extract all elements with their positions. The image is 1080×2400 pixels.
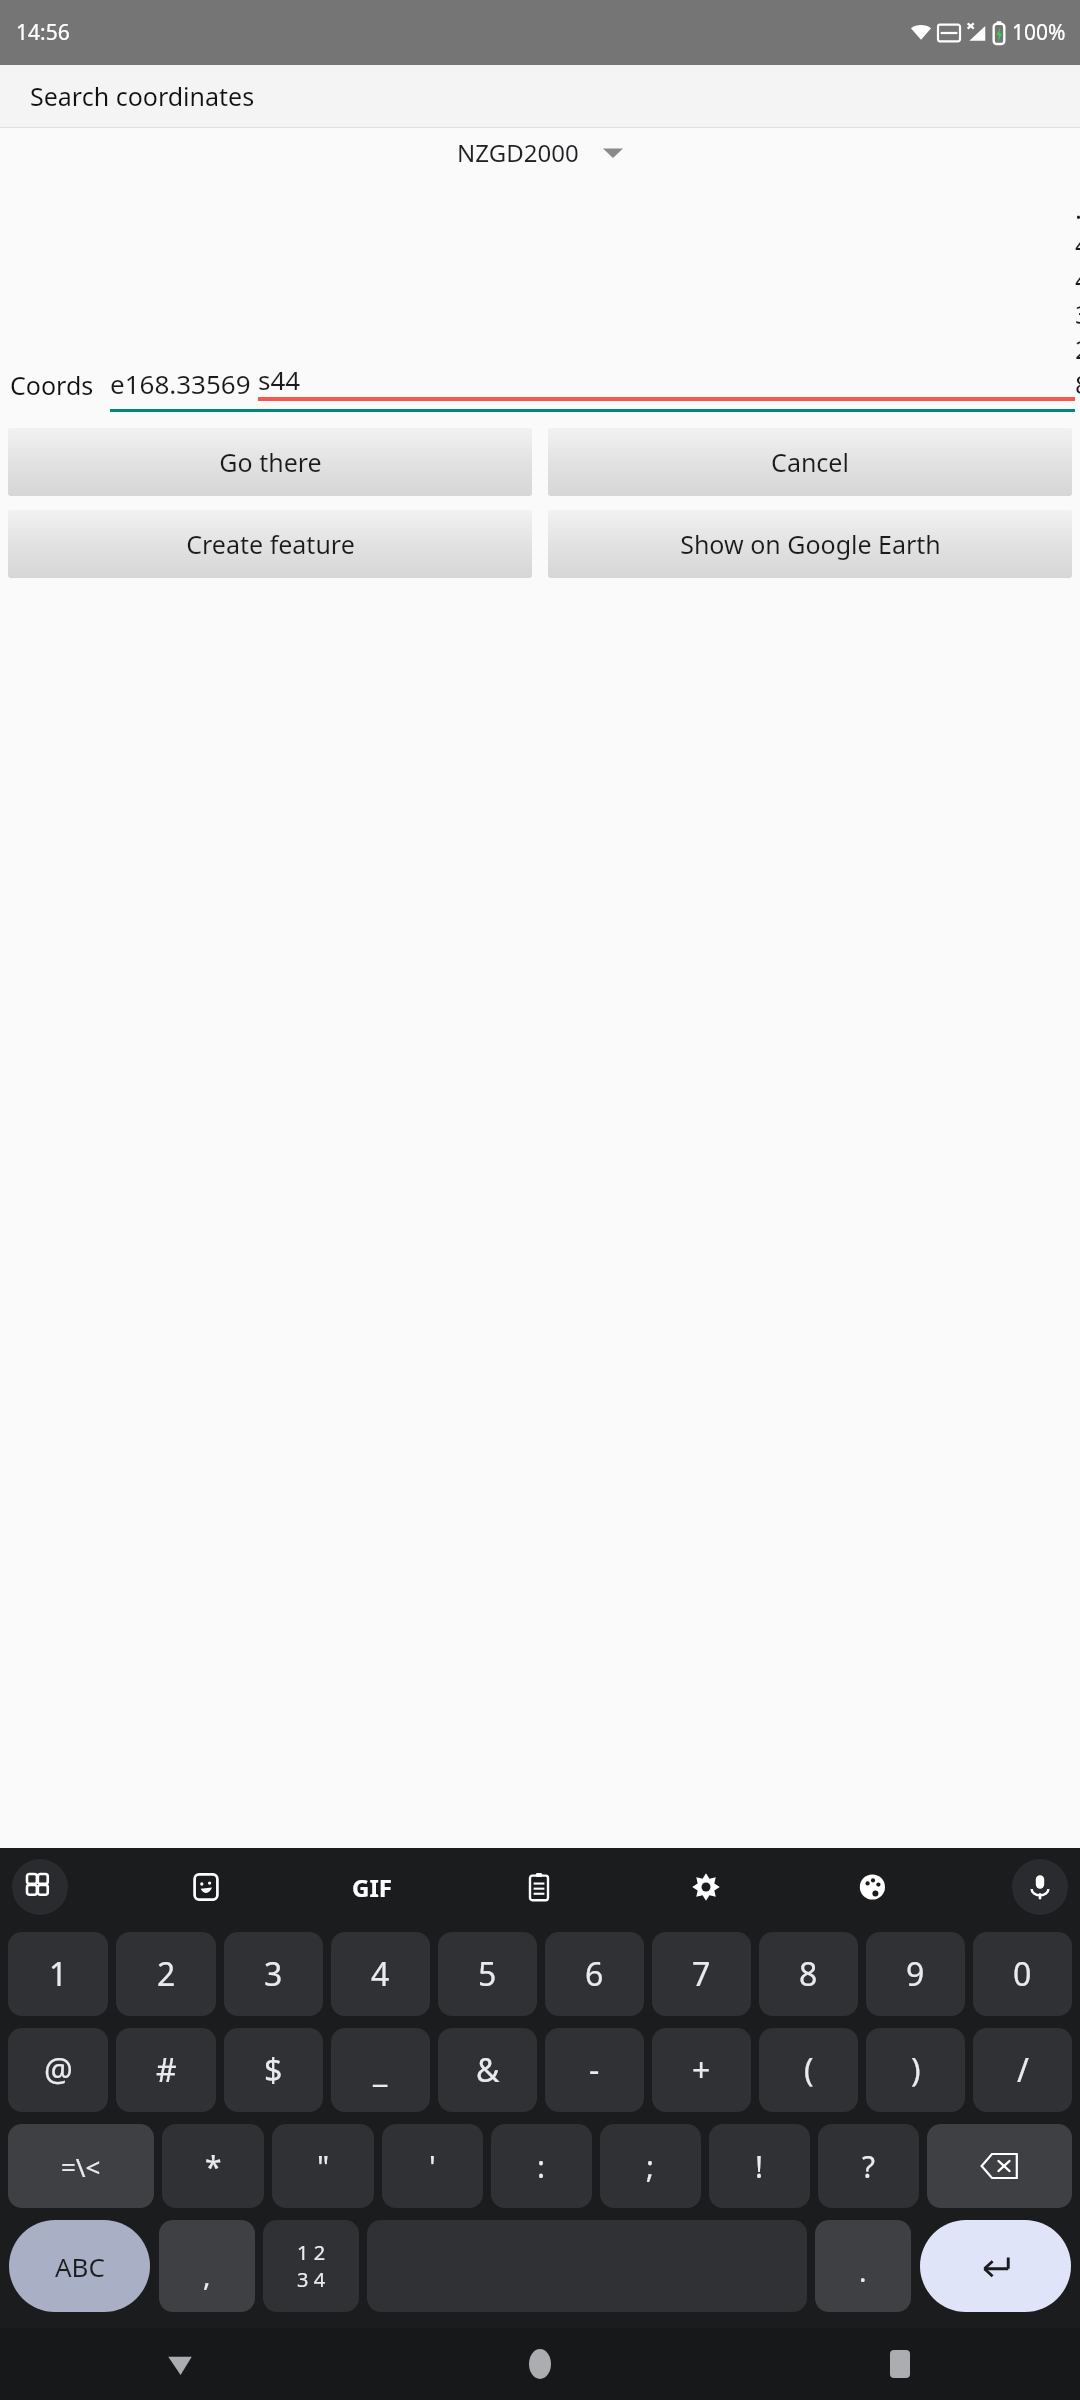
button[interactable]: * (162, 2124, 264, 2208)
button[interactable]: GIF (344, 1863, 400, 1912)
staticText: ? (862, 2146, 876, 2187)
staticText: , (203, 2256, 211, 2294)
staticText: NZGD2000 (457, 136, 579, 169)
button[interactable]: NZGD2000 (0, 136, 1080, 169)
button[interactable]: 8 (759, 1932, 858, 2016)
staticText: 5 (478, 1952, 497, 1996)
button[interactable]: 3 (224, 1932, 323, 2016)
staticText: Coords (10, 368, 94, 402)
staticText: 3 (264, 1952, 283, 1996)
staticText: 0 (1013, 1952, 1032, 1996)
staticText: ABC (55, 2249, 105, 2284)
staticText: $ (264, 2048, 283, 2092)
button[interactable]: 1 2 (263, 2220, 359, 2312)
button[interactable]: ( (759, 2028, 858, 2112)
staticText: Search coordinates (30, 79, 255, 113)
staticText: 9 (906, 1952, 925, 1996)
button[interactable]: Home (360, 2328, 720, 2400)
staticText: Create feature (186, 527, 355, 561)
staticText: Cancel (771, 445, 849, 479)
staticText: . (859, 2252, 867, 2290)
button[interactable]: 2 (116, 1932, 216, 2016)
staticText: ; (646, 2146, 655, 2187)
staticText: 7 (692, 1952, 711, 1996)
staticText: / (1017, 2048, 1029, 2092)
staticText: _ (373, 2048, 388, 2092)
staticText: ) (911, 2048, 921, 2092)
staticText: - (589, 2048, 600, 2092)
staticText: s44 (258, 362, 301, 397)
button[interactable]: Recent apps (720, 2328, 1080, 2400)
staticText: & (476, 2048, 500, 2092)
staticText: @ (44, 2048, 73, 2092)
button[interactable]: - (545, 2028, 644, 2112)
button[interactable]: @ (8, 2028, 108, 2112)
button[interactable]: " (272, 2124, 374, 2208)
button[interactable]: More options (12, 1859, 68, 1915)
staticText: ( (804, 2048, 814, 2092)
staticText: + (692, 2048, 711, 2092)
button[interactable]: . (815, 2220, 911, 2312)
button[interactable]: Cancel (548, 428, 1072, 496)
button[interactable]: Stickers (178, 1859, 234, 1915)
staticText: Show on Google Earth (680, 527, 941, 561)
button[interactable]: $ (224, 2028, 323, 2112)
button[interactable]: 7 (652, 1932, 751, 2016)
button[interactable]: Enter (920, 2220, 1071, 2312)
button[interactable]: 1 (8, 1932, 108, 2016)
staticText: GIF (352, 1871, 392, 1904)
staticText: 14:56 (16, 18, 70, 47)
button[interactable]: 9 (866, 1932, 965, 2016)
button[interactable]: & (438, 2028, 537, 2112)
staticText: 6 (585, 1952, 604, 1996)
staticText: 100% (1012, 18, 1066, 47)
button[interactable]: Create feature (8, 510, 532, 578)
button[interactable]: 6 (545, 1932, 644, 2016)
button[interactable]: , (159, 2220, 255, 2312)
button[interactable]: ' (382, 2124, 483, 2208)
button[interactable]: 5 (438, 1932, 537, 2016)
staticText: e168.33569 (110, 366, 258, 401)
staticText: 1 2 (297, 2239, 326, 2266)
button[interactable]: # (116, 2028, 216, 2112)
button[interactable]: Themes (845, 1859, 901, 1915)
button[interactable]: e168.33569 (110, 191, 1075, 412)
button[interactable]: ABC (9, 2220, 150, 2312)
staticText: : (537, 2146, 546, 2187)
staticText: 8 (799, 1952, 818, 1996)
staticText: ! (755, 2146, 764, 2187)
button[interactable]: Go there (8, 428, 532, 496)
button[interactable]: ! (709, 2124, 810, 2208)
button[interactable]: =\< (8, 2124, 154, 2208)
staticText: " (317, 2146, 330, 2187)
staticText: 2 (157, 1952, 176, 1996)
button[interactable]: Show on Google Earth (548, 510, 1072, 578)
button[interactable]: 0 (973, 1932, 1072, 2016)
staticText: * (205, 2146, 222, 2187)
button[interactable]: Voice input (1012, 1859, 1068, 1915)
staticText: Go there (219, 445, 322, 479)
button[interactable]: Clipboard (511, 1859, 567, 1915)
button[interactable]: / (973, 2028, 1072, 2112)
button[interactable]: Settings (678, 1859, 734, 1915)
button[interactable]: Backspace (927, 2124, 1072, 2208)
button[interactable]: ) (866, 2028, 965, 2112)
button[interactable]: + (652, 2028, 751, 2112)
staticText: 1 (49, 1952, 68, 1996)
button[interactable]: : (491, 2124, 592, 2208)
button[interactable]: ? (818, 2124, 919, 2208)
staticText: ' (429, 2146, 436, 2187)
button[interactable]: _ (331, 2028, 430, 2112)
button[interactable]: ; (600, 2124, 701, 2208)
button[interactable]: 4 (331, 1932, 430, 2016)
staticText: 3 4 (297, 2266, 326, 2293)
staticText: # (156, 2048, 177, 2092)
staticText: =\< (61, 2149, 101, 2184)
staticText: 4 (371, 1952, 390, 1996)
button[interactable]: Back (0, 2328, 360, 2400)
